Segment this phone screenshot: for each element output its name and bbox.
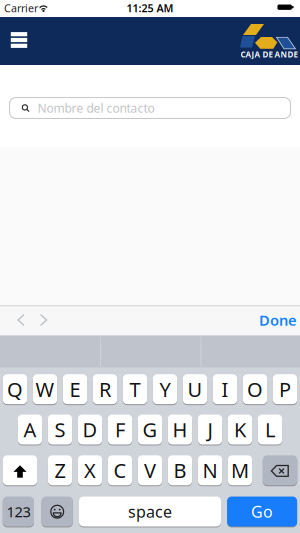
staticText: E bbox=[69, 376, 80, 402]
staticText: Go bbox=[251, 501, 273, 522]
staticText: M bbox=[231, 457, 249, 484]
button[interactable]: M bbox=[228, 455, 252, 486]
staticText: A bbox=[23, 416, 36, 443]
staticText: K bbox=[234, 416, 246, 443]
button[interactable]: E bbox=[63, 374, 87, 405]
staticText: S bbox=[54, 416, 65, 443]
staticText: V bbox=[144, 457, 156, 484]
button[interactable]: Emoji bbox=[42, 496, 73, 527]
staticText: 123 bbox=[6, 502, 30, 521]
button[interactable]: 123 bbox=[3, 496, 34, 527]
button[interactable]: H bbox=[168, 414, 192, 445]
staticText: D bbox=[82, 416, 97, 443]
button[interactable]: P bbox=[273, 374, 297, 405]
staticText: U bbox=[187, 376, 202, 402]
button[interactable]: U bbox=[183, 374, 207, 405]
button[interactable]: Q bbox=[3, 374, 27, 405]
button[interactable]: K bbox=[228, 414, 252, 445]
button[interactable]: N bbox=[198, 455, 222, 486]
staticText: G bbox=[142, 416, 157, 443]
button[interactable]: G bbox=[138, 414, 162, 445]
button[interactable]: Delete bbox=[263, 455, 297, 486]
staticText: Z bbox=[54, 457, 65, 484]
staticText: O bbox=[247, 376, 263, 402]
staticText: Nombre del contacto bbox=[37, 100, 154, 116]
staticText: P bbox=[279, 376, 291, 402]
button[interactable]: D bbox=[78, 414, 102, 445]
staticText: Carrier bbox=[4, 1, 38, 15]
staticText: T bbox=[129, 376, 140, 402]
staticText: N bbox=[202, 457, 217, 484]
button[interactable]: L bbox=[258, 414, 282, 445]
button[interactable]: X bbox=[78, 455, 102, 486]
staticText: CAJA DE ANDE bbox=[240, 49, 297, 60]
staticText: Done bbox=[259, 310, 297, 330]
staticText: R bbox=[99, 376, 111, 402]
button[interactable]: Nombre del contacto bbox=[9, 97, 291, 119]
staticText: space bbox=[128, 501, 172, 522]
button[interactable]: V bbox=[138, 455, 162, 486]
button[interactable]: Menu bbox=[2, 23, 36, 57]
button[interactable]: S bbox=[48, 414, 72, 445]
staticText: 11:25 AM bbox=[126, 1, 173, 15]
button[interactable]: B bbox=[168, 455, 192, 486]
button[interactable]: W bbox=[33, 374, 57, 405]
staticText: C bbox=[113, 457, 126, 484]
button[interactable]: R bbox=[93, 374, 117, 405]
button[interactable]: Shift bbox=[3, 455, 37, 486]
staticText: Y bbox=[159, 376, 170, 402]
button[interactable]: A bbox=[18, 414, 42, 445]
staticText: W bbox=[35, 376, 54, 402]
staticText: B bbox=[173, 457, 186, 484]
button[interactable]: T bbox=[123, 374, 147, 405]
button[interactable]: Z bbox=[48, 455, 72, 486]
button[interactable]: Previous field bbox=[9, 308, 33, 332]
button[interactable]: Done bbox=[259, 310, 297, 330]
staticText: I bbox=[221, 376, 228, 402]
staticText: F bbox=[115, 416, 125, 443]
staticText: X bbox=[84, 457, 96, 484]
button[interactable]: J bbox=[198, 414, 222, 445]
button[interactable]: F bbox=[108, 414, 132, 445]
staticText: Q bbox=[7, 376, 23, 402]
staticText: L bbox=[265, 416, 275, 443]
button[interactable]: Go bbox=[227, 496, 297, 527]
button[interactable]: Y bbox=[153, 374, 177, 405]
staticText: H bbox=[172, 416, 187, 443]
button[interactable]: space bbox=[79, 496, 221, 527]
button[interactable]: C bbox=[108, 455, 132, 486]
button[interactable]: Next field bbox=[32, 308, 56, 332]
button[interactable]: O bbox=[243, 374, 267, 405]
button[interactable]: I bbox=[213, 374, 237, 405]
staticText: J bbox=[207, 416, 212, 443]
